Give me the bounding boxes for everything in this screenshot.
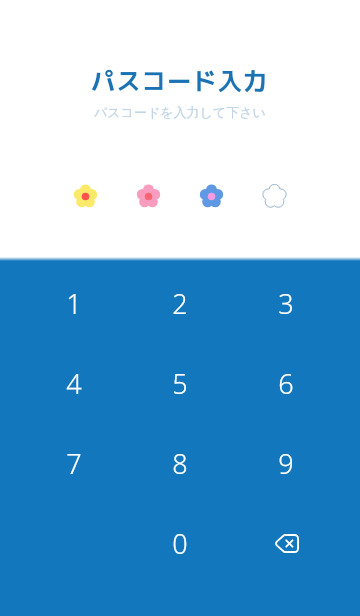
staticText: 3 (278, 285, 294, 322)
button[interactable]: 4 (21, 343, 127, 423)
button[interactable]: Backspace (233, 503, 339, 583)
staticText: パスコードを入力して下さい (94, 104, 266, 120)
button[interactable]: 7 (21, 423, 127, 503)
staticText: 6 (278, 365, 294, 402)
button[interactable]: 1 (21, 263, 127, 343)
staticText: 5 (172, 365, 188, 402)
button[interactable]: 2 (127, 263, 233, 343)
button[interactable]: 3 (233, 263, 339, 343)
staticText: 2 (172, 285, 188, 322)
staticText: 9 (278, 445, 294, 482)
staticText: 8 (172, 445, 188, 482)
button[interactable]: 0 (127, 503, 233, 583)
staticText: 4 (66, 365, 82, 402)
staticText: 7 (66, 445, 82, 482)
button[interactable]: 9 (233, 423, 339, 503)
staticText: 1 (66, 285, 82, 322)
staticText: パスコード入力 (91, 64, 269, 98)
button[interactable]: 8 (127, 423, 233, 503)
button[interactable]: 5 (127, 343, 233, 423)
button[interactable]: 6 (233, 343, 339, 423)
staticText: 0 (172, 525, 188, 562)
